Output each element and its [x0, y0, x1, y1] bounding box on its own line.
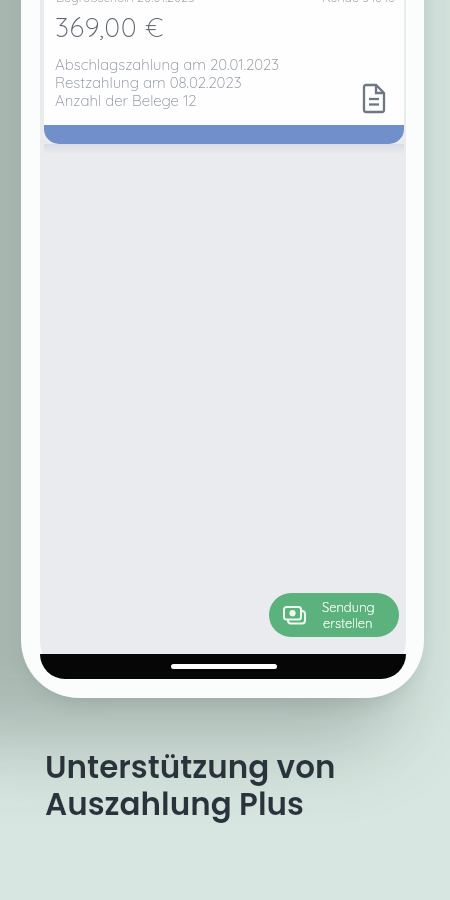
staticText: Begrüßschein 20.01.2023	[56, 0, 195, 5]
button[interactable]: Sendung	[269, 593, 399, 637]
button[interactable]	[44, 0, 404, 144]
staticText: Unterstützung von Auszahlung Plus	[45, 745, 336, 826]
staticText: Kunde 34848	[322, 0, 395, 5]
staticText: Sendung	[322, 599, 375, 615]
staticText: Anzahl der Belege 12	[55, 91, 197, 110]
staticText: Restzahlung am 08.02.2023	[55, 73, 242, 92]
staticText: Abschlagszahlung am 20.01.2023	[55, 55, 280, 74]
staticText: erstellen	[323, 615, 373, 631]
staticText: 369,00 €	[55, 10, 164, 44]
